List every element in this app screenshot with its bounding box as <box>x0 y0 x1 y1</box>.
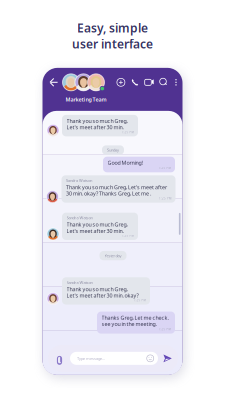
button[interactable]: Attach <box>54 352 65 365</box>
staticText: Let's meet after 30 min. okay? <box>66 292 138 299</box>
staticText: 30 min. okay? Thanks Greg, Let me . <box>66 190 151 197</box>
staticText: 1:25 PM <box>159 197 171 200</box>
staticText: 1:25 PM <box>158 166 170 170</box>
staticText: Sandra Watson <box>66 178 92 183</box>
staticText: user interface <box>72 36 153 52</box>
staticText: Thank you so much Greg, Let's meet after <box>66 184 167 191</box>
staticText: Good Morning! <box>107 159 142 166</box>
staticText: 1:25 PM <box>121 234 133 237</box>
staticText: Easy, simple <box>77 20 148 36</box>
staticText: 1:25 PM <box>133 298 145 302</box>
staticText: Let's meet after 30 min. <box>66 124 123 131</box>
button[interactable]: Search <box>158 76 168 88</box>
staticText: Let's meet after 30 min. <box>66 227 123 234</box>
staticText: Sandra Watson <box>66 215 92 220</box>
staticText: Yesterday <box>104 253 121 258</box>
staticText: Marketing Team <box>65 96 106 103</box>
staticText: Thanks Greg, Let me check. <box>101 314 168 321</box>
staticText: 1:25 PM <box>121 130 133 134</box>
button[interactable]: Call <box>130 76 140 88</box>
staticText: Sunday <box>107 147 119 153</box>
button[interactable]: Add <box>116 76 126 88</box>
button[interactable]: Send <box>162 352 173 365</box>
button[interactable]: Video call <box>144 76 154 88</box>
staticText: 1:25 PM <box>158 328 170 331</box>
staticText: Type message... <box>77 356 105 361</box>
staticText: Thank you so much Greg, <box>66 221 127 228</box>
button[interactable]: More options <box>173 76 178 88</box>
staticText: Thank you so much Greg, <box>66 117 127 124</box>
button[interactable]: Back <box>48 76 58 88</box>
staticText: see you in the meeting. <box>101 320 156 328</box>
staticText: Sandra Watson <box>66 280 92 285</box>
staticText: Thank you so much Greg, <box>66 286 127 293</box>
